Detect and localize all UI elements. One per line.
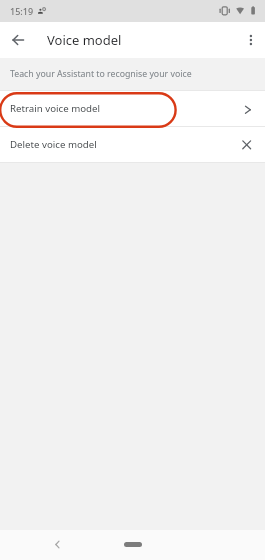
button[interactable]: Home bbox=[124, 542, 142, 547]
button[interactable]: Back bbox=[43, 532, 71, 560]
button[interactable]: More options bbox=[231, 23, 265, 57]
button[interactable]: Delete voice model bbox=[0, 127, 265, 162]
staticText: Teach your Assistant to recognise your v… bbox=[10, 68, 192, 80]
staticText: Delete voice model bbox=[10, 138, 97, 151]
button[interactable]: Retrain voice model bbox=[0, 91, 265, 126]
staticText: Voice model bbox=[47, 31, 122, 49]
staticText: 15:19 bbox=[10, 5, 34, 17]
staticText: Retrain voice model bbox=[10, 102, 100, 115]
button[interactable]: Back bbox=[2, 23, 36, 57]
